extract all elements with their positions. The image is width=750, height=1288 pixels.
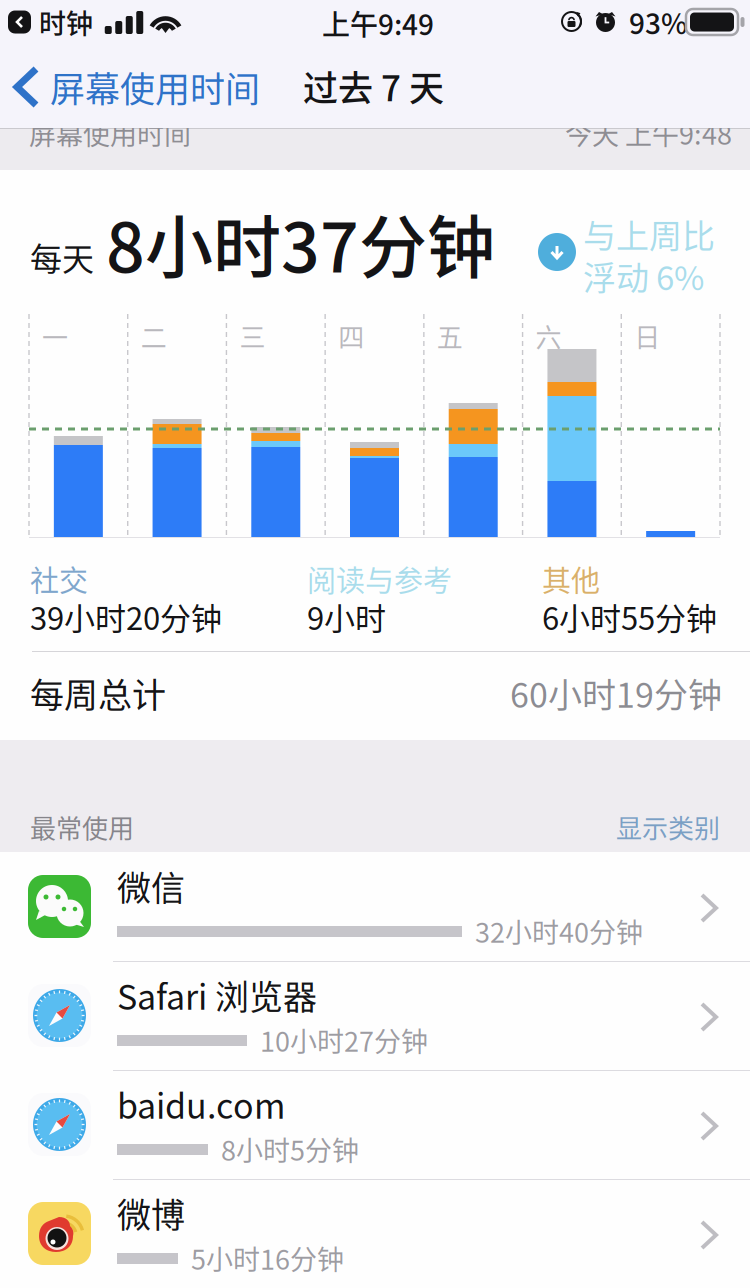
button[interactable]: 时钟: [8, 2, 93, 42]
staticText: 阅读与参考: [307, 558, 452, 600]
staticText: 一: [42, 317, 68, 355]
button[interactable]: 显示类别: [616, 808, 720, 846]
staticText: 浮动 6%: [583, 252, 704, 300]
staticText: 32小时40分钟: [475, 911, 643, 951]
staticText: 10小时27分钟: [260, 1020, 428, 1060]
staticText: 其他: [542, 558, 600, 600]
staticText: 今天 上午9:48: [565, 113, 732, 153]
staticText: 8小时37分钟: [106, 193, 495, 292]
button[interactable]: [0, 0, 750, 1288]
staticText: baidu.com: [117, 1079, 285, 1129]
staticText: 上午9:49: [322, 3, 434, 43]
staticText: 过去 7 天: [303, 61, 444, 111]
staticText: 每周总计: [30, 668, 166, 718]
staticText: 五: [437, 317, 463, 355]
staticText: 日: [634, 317, 660, 355]
staticText: 93%: [629, 2, 687, 42]
button[interactable]: [0, 0, 750, 1288]
button[interactable]: [0, 0, 750, 1288]
staticText: 屏幕使用时间: [50, 62, 260, 112]
staticText: 时钟: [39, 2, 93, 42]
staticText: 5小时16分钟: [191, 1238, 344, 1278]
staticText: 8小时5分钟: [221, 1129, 359, 1169]
staticText: 每天: [30, 234, 94, 280]
staticText: 微博: [117, 1188, 185, 1238]
staticText: 屏幕使用时间: [29, 113, 191, 153]
staticText: 39小时20分钟: [30, 594, 222, 639]
staticText: 社交: [30, 558, 88, 600]
staticText: 与上周比: [583, 210, 715, 258]
staticText: Safari 浏览器: [117, 970, 317, 1020]
staticText: 二: [141, 317, 167, 355]
button[interactable]: [0, 0, 750, 1288]
button[interactable]: 屏幕使用时间: [12, 62, 260, 112]
staticText: 显示类别: [616, 808, 720, 846]
staticText: 三: [239, 317, 265, 355]
staticText: 60小时19分钟: [510, 668, 722, 718]
staticText: 微信: [117, 861, 185, 911]
staticText: 四: [338, 317, 364, 355]
staticText: 9小时: [307, 594, 386, 639]
staticText: 6小时55分钟: [542, 594, 717, 639]
staticText: 六: [536, 317, 562, 355]
staticText: 最常使用: [30, 808, 134, 846]
